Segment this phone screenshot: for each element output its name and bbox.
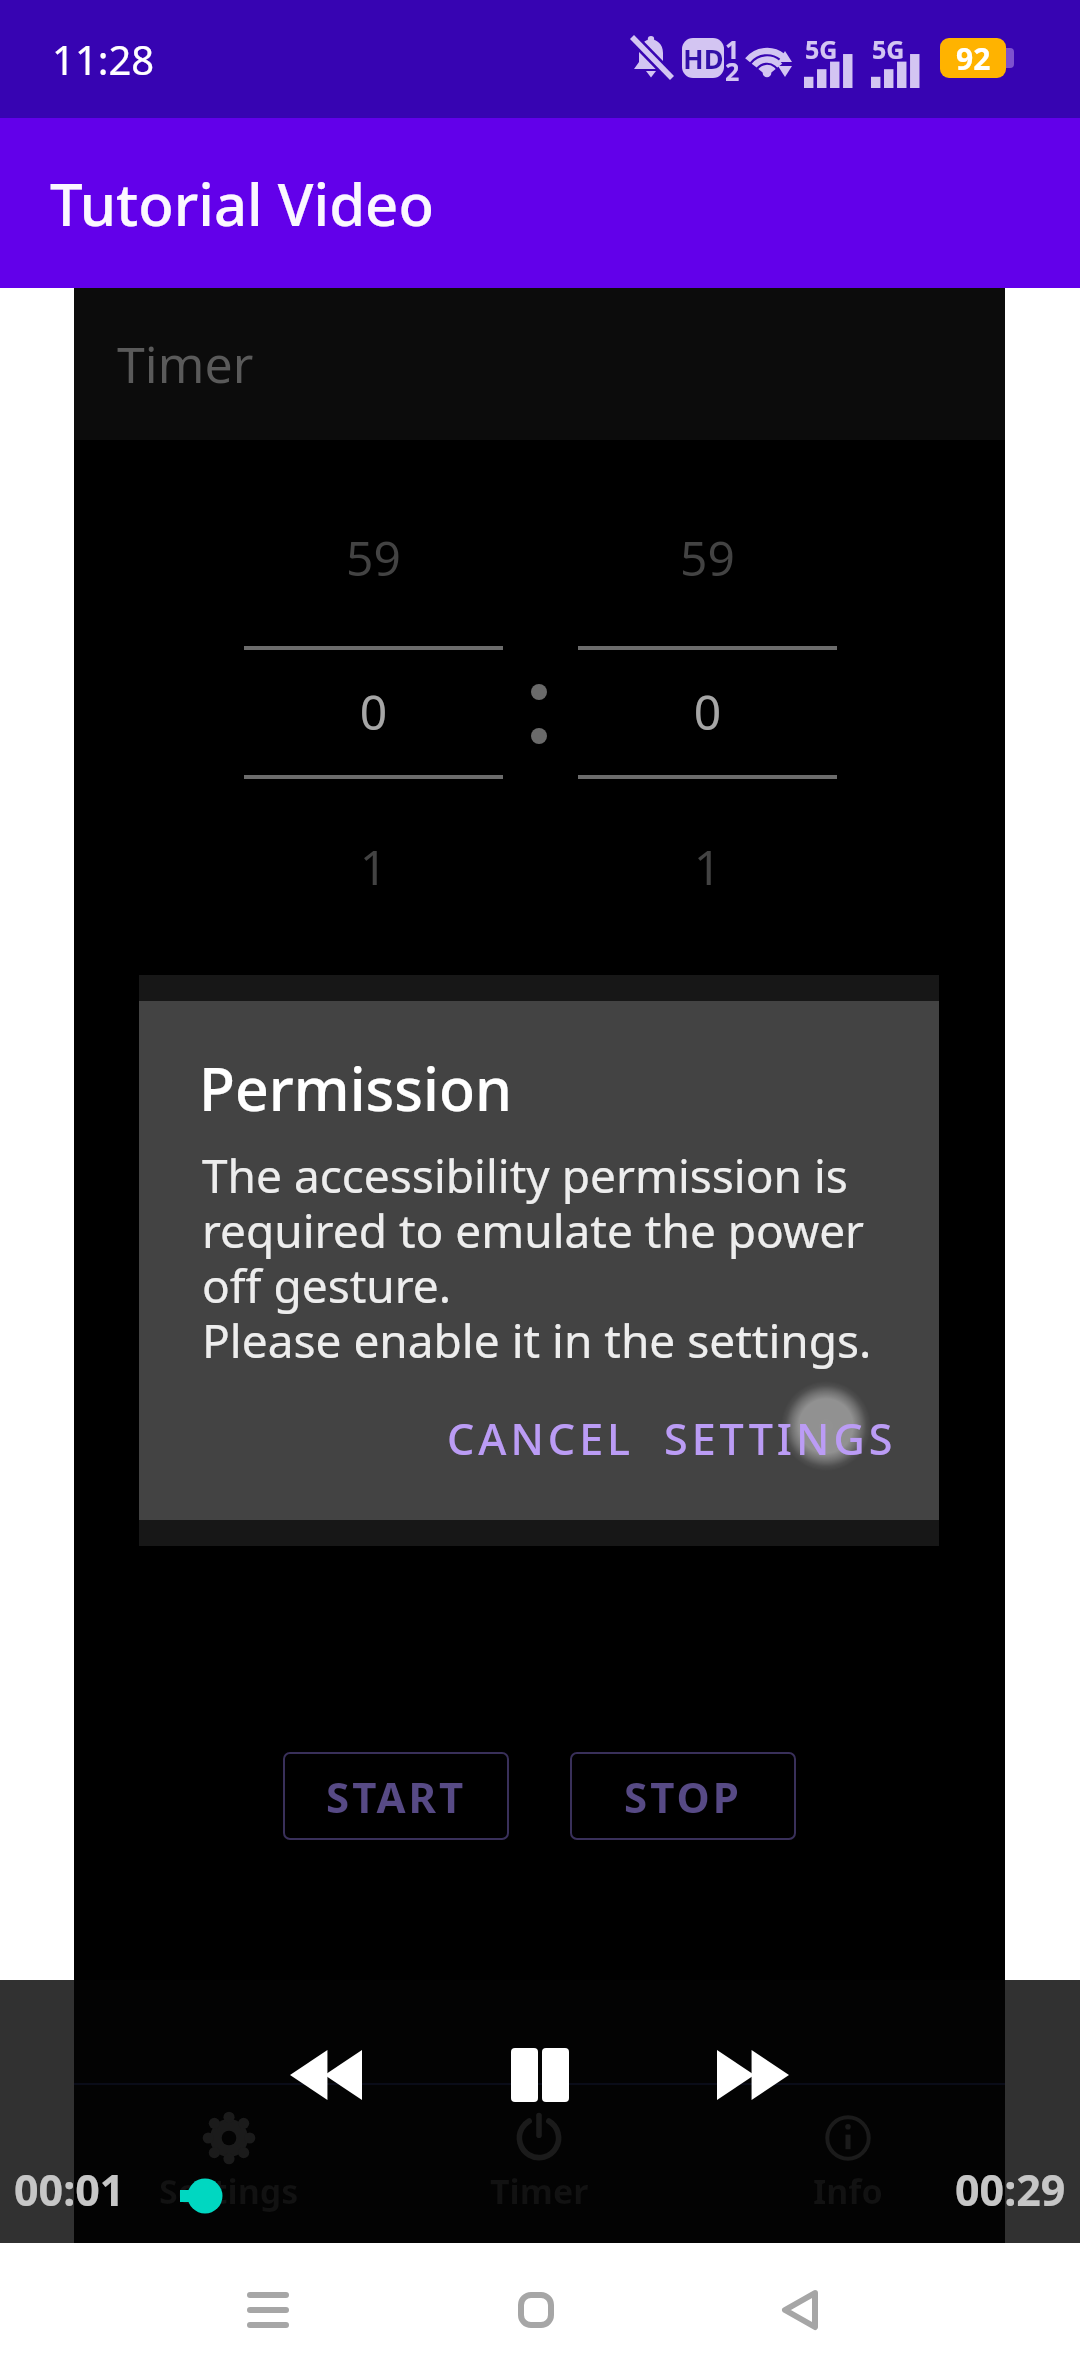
button[interactable]: Back — [740, 2250, 860, 2370]
staticText: 00:29 — [955, 2160, 1066, 2219]
staticText: Timer — [490, 2168, 589, 2214]
staticText: Permission — [199, 1048, 512, 1128]
staticText: 92 — [956, 38, 991, 78]
staticText: 11:28 — [52, 32, 155, 86]
button[interactable]: Timer — [434, 2110, 644, 2214]
staticText: HD — [683, 40, 724, 77]
button[interactable]: Pause — [486, 2021, 594, 2129]
staticText: 0 — [578, 679, 837, 744]
staticText: SETTINGS — [664, 1409, 897, 1468]
button[interactable]: STOP — [570, 1752, 796, 1840]
staticText: Info — [813, 2168, 883, 2214]
button[interactable]: START — [283, 1752, 509, 1840]
staticText: CANCEL — [447, 1409, 635, 1468]
staticText: STOP — [624, 1768, 742, 1825]
staticText: 0 — [244, 679, 503, 744]
button[interactable]: Settings — [124, 2110, 334, 2214]
button[interactable]: Recents — [208, 2250, 328, 2370]
staticText: The accessibility permission is required… — [202, 1144, 872, 1372]
staticText: 59 — [578, 525, 837, 590]
staticText: 1 — [578, 834, 837, 899]
staticText: 5G — [872, 32, 905, 66]
button[interactable]: SETTINGS — [656, 1399, 905, 1478]
staticText: 00:01 — [14, 2160, 125, 2219]
staticText: START — [326, 1768, 467, 1825]
staticText: 5G — [805, 32, 838, 66]
button[interactable]: Info — [743, 2110, 953, 2214]
staticText: Tutorial Video — [50, 164, 434, 243]
button[interactable]: Rewind — [272, 2021, 380, 2129]
button[interactable]: CANCEL — [439, 1399, 643, 1478]
staticText: 59 — [244, 525, 503, 590]
staticText: 1 — [725, 32, 740, 66]
button[interactable]: Fast forward — [699, 2021, 807, 2129]
staticText: 1 — [244, 834, 503, 899]
button[interactable]: Home — [476, 2250, 596, 2370]
staticText: Settings — [159, 2168, 299, 2214]
staticText: Timer — [117, 330, 254, 398]
staticText: 2 — [725, 54, 740, 88]
